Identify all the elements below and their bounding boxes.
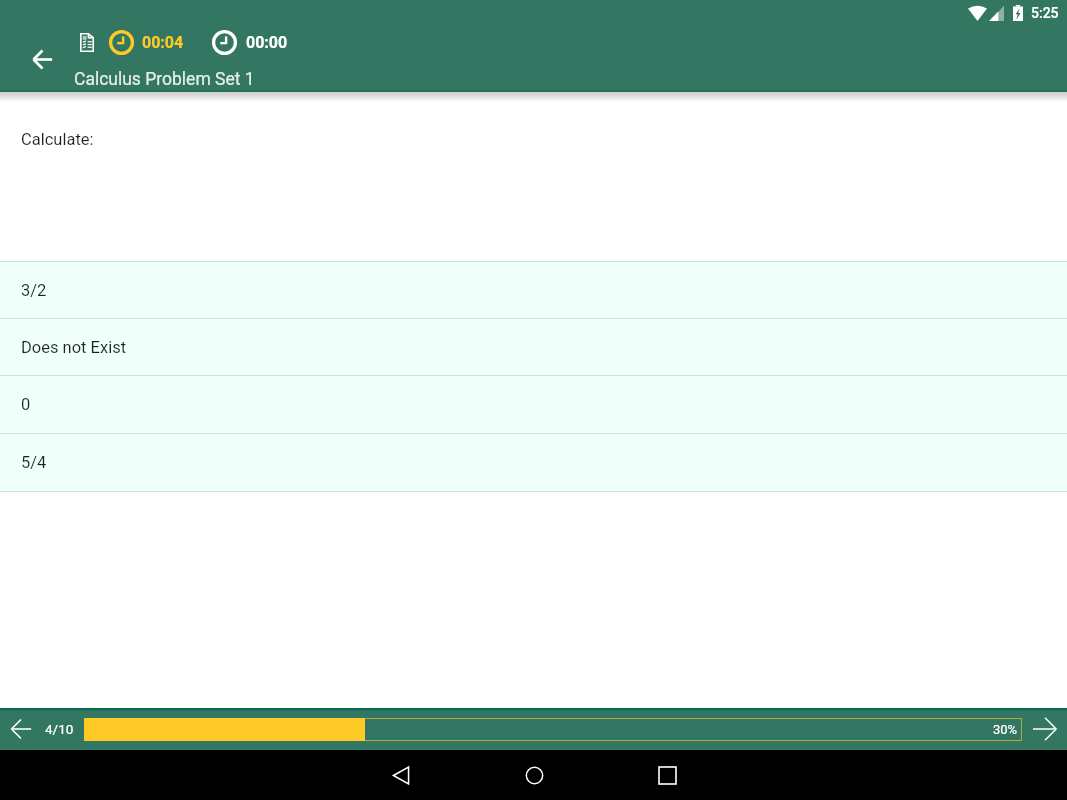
staticText: Calculus Problem Set 1 (74, 69, 255, 90)
button[interactable]: 3/2 (0, 262, 1067, 318)
button[interactable]: 0 (0, 376, 1067, 433)
staticText: 0 (21, 395, 31, 414)
button[interactable]: Back (377, 751, 425, 799)
button[interactable]: Previous question (0, 708, 41, 750)
button[interactable]: Recent apps (643, 751, 691, 799)
staticText: 3/2 (21, 281, 47, 300)
staticText: 30% (993, 722, 1018, 737)
button[interactable]: Next question (1022, 708, 1067, 750)
button[interactable]: Does not Exist (0, 319, 1067, 375)
staticText: Calculate: (21, 130, 94, 149)
button[interactable]: Back (22, 39, 62, 79)
staticText: 4/10 (45, 721, 74, 737)
staticText: Does not Exist (21, 338, 127, 357)
staticText: 00:00 (246, 33, 288, 52)
staticText: 00:04 (142, 33, 184, 52)
button[interactable]: Home (510, 751, 558, 799)
staticText: 5:25 (1031, 5, 1059, 21)
button[interactable]: 5/4 (0, 434, 1067, 491)
staticText: 5/4 (21, 453, 47, 472)
